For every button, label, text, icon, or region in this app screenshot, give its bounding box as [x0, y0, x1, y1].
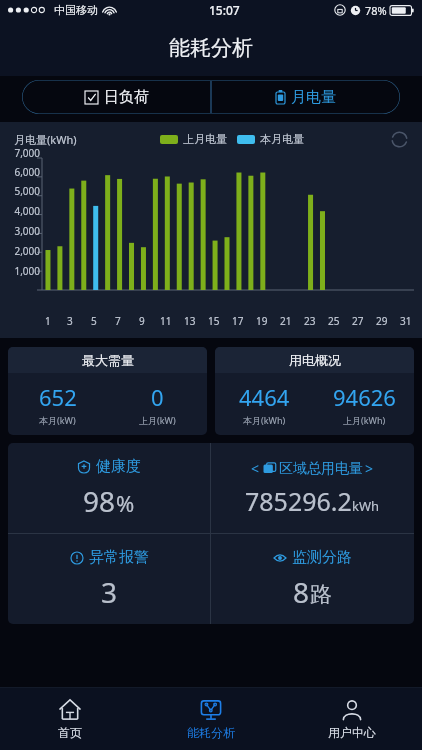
button[interactable]: 异常报警 — [8, 534, 210, 624]
staticText: 98 — [83, 482, 116, 520]
staticText: > — [365, 459, 374, 478]
staticText: 13 — [184, 314, 196, 328]
staticText: 785296.2 — [245, 484, 352, 518]
staticText: 19 — [256, 314, 268, 328]
staticText: 日负荷 — [104, 88, 149, 107]
staticText: 月电量 — [291, 88, 336, 107]
staticText: 用户中心 — [328, 725, 376, 740]
staticText: 最大需量 — [82, 352, 134, 368]
staticText: < — [251, 459, 260, 478]
staticText: kWh — [352, 497, 380, 515]
staticText: 31 — [400, 314, 412, 328]
staticText: 首页 — [58, 725, 82, 740]
staticText: 9 — [139, 314, 145, 328]
staticText: 2,000 — [14, 244, 40, 258]
staticText: 路 — [310, 581, 332, 609]
staticText: 8 — [293, 573, 310, 611]
staticText: 4464 — [239, 382, 290, 412]
staticText: 23 — [304, 314, 316, 328]
staticText: 3 — [101, 573, 118, 611]
button[interactable]: 日负荷 — [22, 80, 211, 114]
button[interactable]: 最大需量 — [8, 347, 207, 435]
staticText: 用电概况 — [289, 352, 341, 368]
staticText: 能耗分析 — [169, 35, 253, 61]
staticText: 健康度 — [96, 457, 141, 476]
staticText: 月电量(kWh) — [14, 132, 77, 147]
staticText: 7 — [115, 314, 121, 328]
staticText: 21 — [280, 314, 292, 328]
staticText: 78% — [365, 3, 387, 18]
staticText: 区域总用电量 — [279, 460, 363, 478]
staticText: 上月(kWh) — [343, 414, 386, 426]
staticText: 7,000 — [14, 146, 40, 160]
button[interactable]: 月电量 — [211, 80, 400, 114]
button[interactable]: 监测分路 — [211, 534, 414, 624]
staticText: 异常报警 — [89, 548, 149, 567]
button[interactable]: 用户中心 — [281, 688, 422, 750]
staticText: 监测分路 — [292, 548, 352, 567]
button[interactable]: < — [211, 443, 414, 533]
staticText: 6,000 — [14, 165, 40, 179]
staticText: 4,000 — [14, 204, 40, 218]
staticText: % — [116, 488, 135, 518]
button[interactable]: 能耗分析 — [140, 688, 281, 750]
staticText: 3 — [67, 314, 73, 328]
staticText: 17 — [232, 314, 244, 328]
staticText: 本月电量 — [260, 132, 304, 146]
staticText: 能耗分析 — [187, 725, 235, 740]
staticText: 27 — [352, 314, 364, 328]
staticText: 0 — [151, 382, 164, 412]
staticText: 29 — [376, 314, 388, 328]
staticText: 1,000 — [14, 264, 40, 278]
staticText: 5 — [91, 314, 97, 328]
staticText: 1 — [45, 314, 51, 328]
staticText: 652 — [39, 382, 77, 412]
button[interactable]: 健康度 — [8, 443, 210, 533]
staticText: 上月(kW) — [139, 414, 176, 426]
staticText: 5,000 — [14, 184, 40, 198]
button[interactable]: 刷新 — [388, 128, 410, 150]
staticText: 15 — [208, 314, 220, 328]
button[interactable]: 用电概况 — [215, 347, 414, 435]
staticText: 3,000 — [14, 224, 40, 238]
staticText: 上月电量 — [183, 132, 227, 146]
staticText: 94626 — [333, 382, 396, 412]
button[interactable]: 首页 — [0, 688, 140, 750]
staticText: 本月(kWh) — [243, 414, 286, 426]
staticText: 本月(kW) — [39, 414, 76, 426]
staticText: 11 — [160, 314, 172, 328]
staticText: 15:07 — [209, 2, 240, 18]
staticText: 25 — [328, 314, 340, 328]
staticText: 中国移动 — [54, 3, 98, 17]
